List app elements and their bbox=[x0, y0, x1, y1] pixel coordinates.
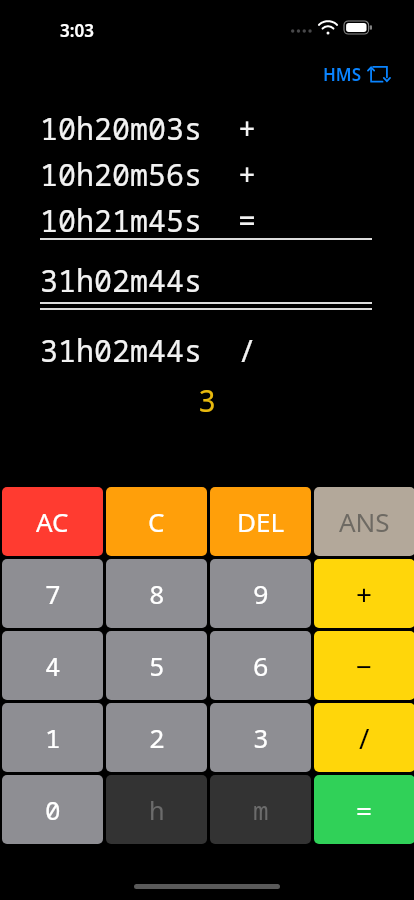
staticText: 0 bbox=[45, 792, 61, 827]
button[interactable]: DEL bbox=[210, 487, 311, 556]
staticText: 10h20m56s + bbox=[40, 154, 256, 195]
staticText: 31h02m44s / bbox=[40, 330, 256, 371]
button[interactable]: 2 bbox=[106, 703, 207, 772]
button[interactable]: 1 bbox=[2, 703, 103, 772]
staticText: 31h02m44s bbox=[40, 260, 202, 301]
staticText: 3:03 bbox=[60, 19, 94, 42]
button[interactable]: C bbox=[106, 487, 207, 556]
button[interactable]: AC bbox=[2, 487, 103, 556]
staticText: AC bbox=[36, 504, 69, 539]
button[interactable]: HMS bbox=[320, 60, 394, 88]
staticText: 3 bbox=[0, 380, 414, 421]
button[interactable]: 7 bbox=[2, 559, 103, 628]
button[interactable]: = bbox=[314, 775, 414, 844]
staticText: DEL bbox=[237, 504, 285, 539]
staticText: 8 bbox=[149, 576, 165, 611]
staticText: 10h20m03s + bbox=[40, 108, 256, 149]
staticText: 2 bbox=[149, 720, 165, 755]
staticText: = bbox=[356, 791, 373, 829]
staticText: / bbox=[359, 719, 370, 757]
button[interactable]: ANS bbox=[314, 487, 414, 556]
staticText: 6 bbox=[253, 648, 269, 683]
staticText: ANS bbox=[339, 504, 390, 539]
button[interactable]: m bbox=[210, 775, 311, 844]
button[interactable]: 4 bbox=[2, 631, 103, 700]
button[interactable]: − bbox=[314, 631, 414, 700]
button[interactable]: 8 bbox=[106, 559, 207, 628]
staticText: 4 bbox=[45, 648, 61, 683]
button[interactable]: 3 bbox=[210, 703, 311, 772]
button[interactable]: 0 bbox=[2, 775, 103, 844]
staticText: 10h21m45s = bbox=[40, 200, 256, 241]
button[interactable]: 5 bbox=[106, 631, 207, 700]
staticText: + bbox=[356, 575, 373, 613]
staticText: − bbox=[356, 647, 373, 685]
staticText: C bbox=[148, 504, 165, 539]
button[interactable]: 9 bbox=[210, 559, 311, 628]
button[interactable]: 6 bbox=[210, 631, 311, 700]
staticText: 7 bbox=[45, 576, 61, 611]
staticText: 3 bbox=[253, 720, 269, 755]
button[interactable]: + bbox=[314, 559, 414, 628]
staticText: 9 bbox=[253, 576, 269, 611]
button[interactable]: / bbox=[314, 703, 414, 772]
button[interactable]: h bbox=[106, 775, 207, 844]
staticText: 1 bbox=[45, 720, 61, 755]
staticText: m bbox=[253, 792, 269, 827]
staticText: 5 bbox=[149, 648, 165, 683]
staticText: h bbox=[149, 792, 165, 827]
staticText: HMS bbox=[323, 63, 361, 86]
